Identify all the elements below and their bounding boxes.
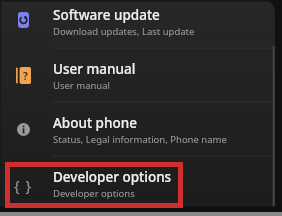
staticText: User manual <box>53 79 110 92</box>
staticText: User manual <box>53 60 136 78</box>
staticText: ? <box>23 69 28 83</box>
staticText: Status, Legal information, Phone name <box>53 133 227 146</box>
button[interactable]: ? <box>0 49 282 103</box>
button[interactable]: { } <box>0 157 282 211</box>
staticText: Developer options <box>53 168 172 186</box>
staticText: Developer options <box>53 187 135 200</box>
button[interactable]: Software update <box>0 0 282 49</box>
staticText: Software update <box>53 6 160 24</box>
button[interactable]: About phone <box>0 103 282 157</box>
staticText: Download updates, Last update <box>53 25 195 38</box>
staticText: { } <box>14 175 33 195</box>
staticText: About phone <box>53 114 137 132</box>
